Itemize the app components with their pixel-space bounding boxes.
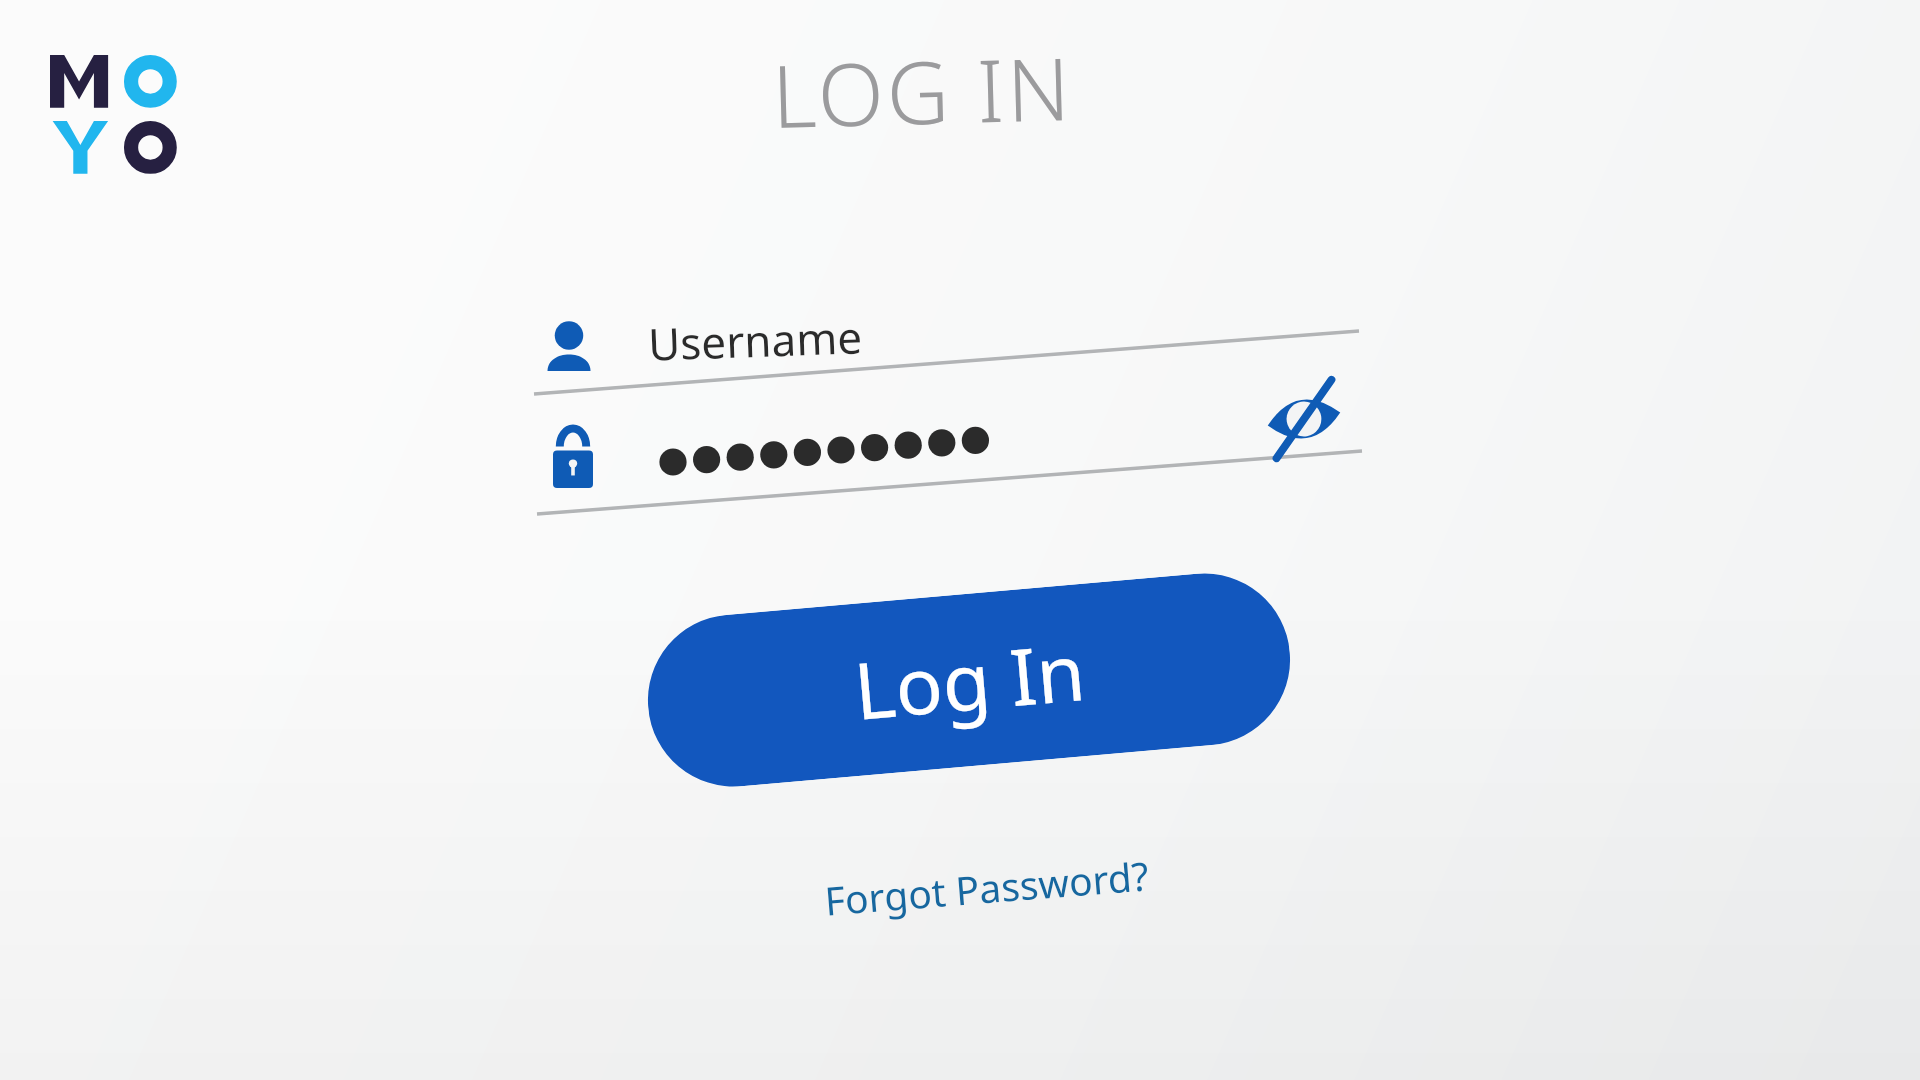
staticText: Forgot Password? [822, 848, 1151, 927]
staticText: Username [647, 306, 864, 374]
staticText: LOG IN [770, 28, 1074, 153]
staticText: Log In [850, 617, 1089, 743]
button[interactable]: Username [518, 298, 1363, 402]
button[interactable]: Forgot Password? [806, 846, 1166, 928]
button[interactable]: Log In [641, 566, 1297, 794]
button[interactable]: Show password [1258, 374, 1350, 464]
button[interactable] [523, 406, 1368, 522]
